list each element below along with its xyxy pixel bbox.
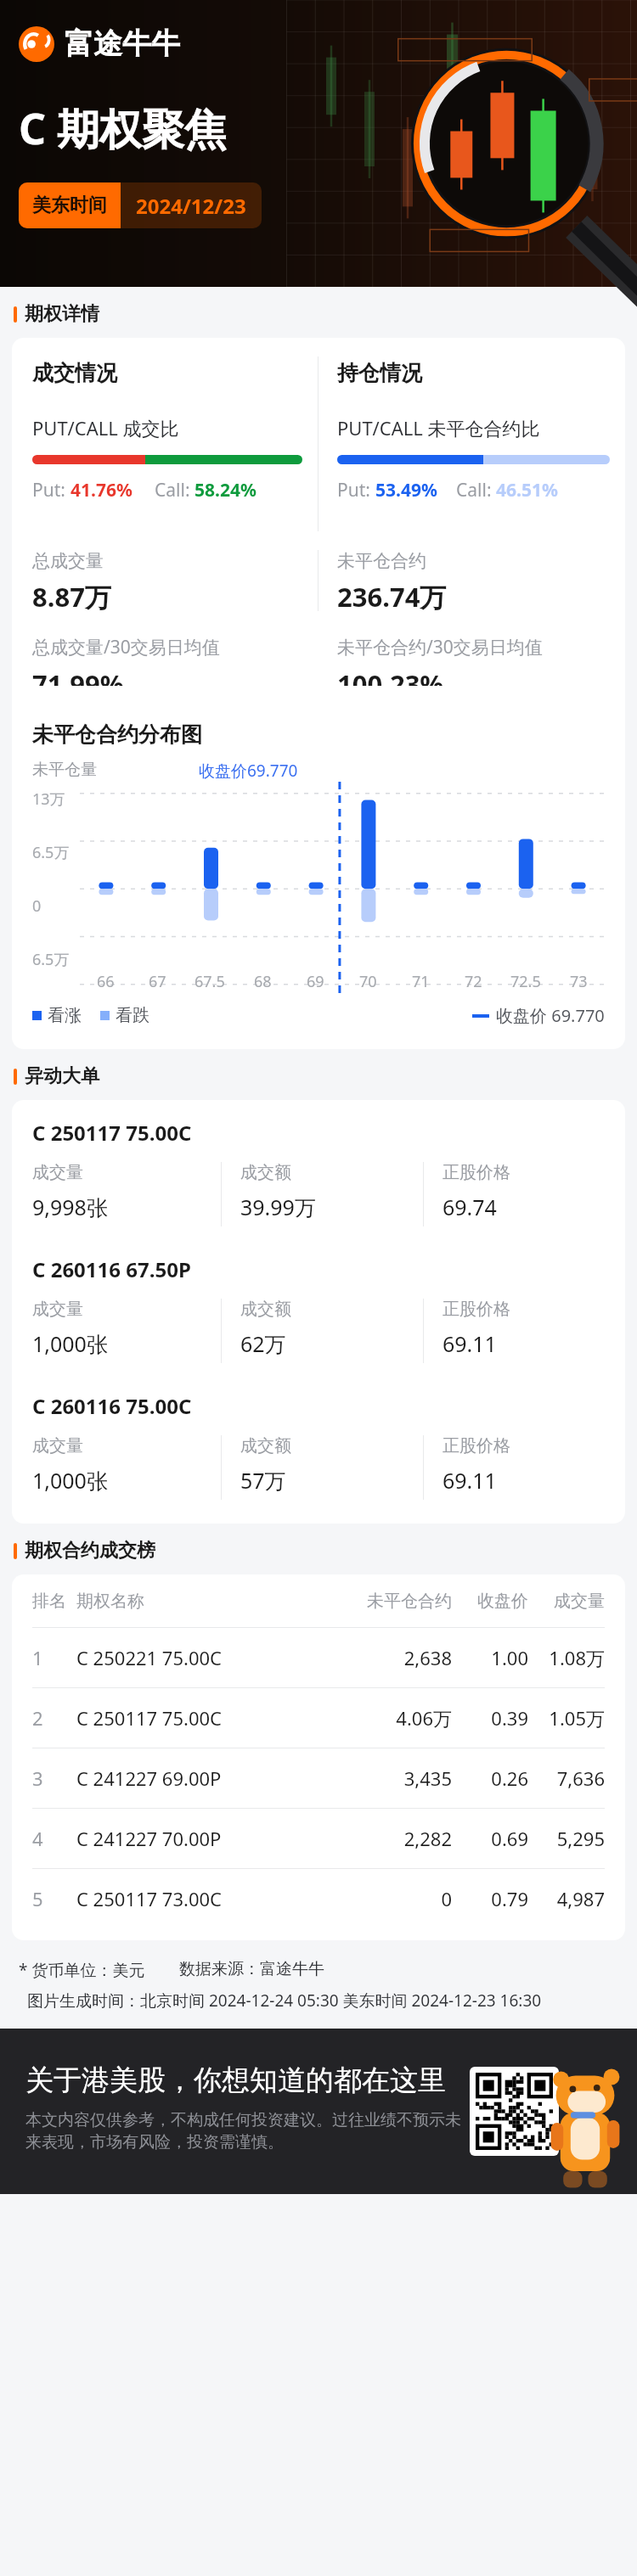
staticText: 2024/12/23 (136, 192, 246, 220)
staticText: 71 (412, 971, 430, 992)
staticText: 0 (32, 895, 42, 917)
staticText: 期权合约成交榜 (25, 1539, 155, 1563)
staticText: 57万 (240, 1466, 286, 1495)
staticText: 68 (254, 971, 272, 992)
staticText: 异动大单 (25, 1064, 99, 1088)
staticText: 1,000张 (32, 1329, 108, 1358)
staticText: 1.00 (452, 1645, 528, 1670)
staticText: 39.99万 (240, 1193, 316, 1221)
staticText: 69.74 (443, 1193, 497, 1221)
staticText: 2,638 (352, 1645, 452, 1670)
staticText: 成交额 (240, 1435, 291, 1456)
staticText: PUT/CALL 未平仓合约比 (337, 415, 540, 441)
staticText: 5 (32, 1886, 76, 1911)
staticText: 成交额 (240, 1162, 291, 1183)
staticText: 美东时间 (32, 194, 107, 217)
staticText: 总成交量 (32, 550, 104, 572)
staticText: 72.5 (510, 971, 541, 992)
staticText: 5,295 (528, 1826, 605, 1851)
staticText: 期权名称 (76, 1591, 352, 1612)
staticText: 3 (32, 1765, 76, 1791)
staticText: C 250221 75.00C (76, 1645, 352, 1670)
staticText: 8.87万 (32, 579, 111, 615)
staticText: C 241227 70.00P (76, 1826, 352, 1851)
staticText: 成交额 (240, 1299, 291, 1320)
staticText: 期权详情 (25, 302, 99, 326)
staticText: 未平仓合约/30交易日均值 (337, 635, 543, 659)
staticText: 236.74万 (337, 579, 447, 615)
staticText: 3,435 (352, 1765, 452, 1791)
staticText: 收盘价69.770 (199, 760, 298, 782)
staticText: 成交量 (32, 1435, 83, 1456)
button[interactable]: 美东时间 (19, 182, 262, 228)
button[interactable]: 3 (12, 1748, 625, 1808)
staticText: 100.23% (337, 666, 444, 686)
staticText: * 货币单位：美元 (19, 1959, 145, 1981)
staticText: 未平仓量 (32, 760, 97, 780)
staticText: 2 (32, 1705, 76, 1731)
button[interactable]: QR code (470, 2067, 559, 2156)
button[interactable]: 1 (12, 1628, 625, 1687)
staticText: 本文内容仅供参考，不构成任何投资建议。过往业绩不预示未来表现，市场有风险，投资需… (25, 2110, 465, 2152)
staticText: 总成交量/30交易日均值 (32, 635, 220, 659)
staticText: 6.5万 (32, 949, 70, 970)
staticText: 0.26 (452, 1765, 528, 1791)
staticText: 未平仓合约 (337, 550, 426, 572)
staticText: 正股价格 (443, 1435, 510, 1456)
staticText: 图片生成时间：北京时间 2024-12-24 05:30 美东时间 2024-1… (27, 1990, 542, 2012)
staticText: 66 (97, 971, 115, 992)
staticText: PUT/CALL 成交比 (32, 415, 179, 441)
staticText: 成交量 (528, 1591, 605, 1612)
staticText: C 250117 73.00C (76, 1886, 352, 1911)
staticText: 富途牛牛 (65, 25, 180, 62)
staticText: 1.08万 (528, 1645, 605, 1670)
staticText: Put: (337, 478, 375, 502)
staticText: 46.51% (496, 478, 558, 502)
staticText: 69.11 (443, 1466, 497, 1495)
staticText: 41.76% (70, 478, 132, 502)
staticText: 6.5万 (32, 842, 70, 863)
staticText: 未平仓合约分布图 (32, 721, 202, 748)
staticText: 0.79 (452, 1886, 528, 1911)
staticText: 72 (465, 971, 482, 992)
staticText: C 241227 69.00P (76, 1765, 352, 1791)
staticText: 1.05万 (528, 1705, 605, 1731)
staticText: 7,636 (528, 1765, 605, 1791)
staticText: 4 (32, 1826, 76, 1851)
staticText: 9,998张 (32, 1193, 108, 1221)
staticText: 1 (32, 1645, 76, 1670)
staticText: 71.99% (32, 666, 124, 686)
staticText: 0 (352, 1886, 452, 1911)
staticText: 看跌 (116, 1005, 149, 1026)
staticText: 排名 (32, 1591, 76, 1612)
staticText: 62万 (240, 1329, 286, 1358)
staticText: 成交量 (32, 1162, 83, 1183)
staticText: 4.06万 (352, 1705, 452, 1731)
staticText: 69 (307, 971, 324, 992)
button[interactable]: C 260116 67.50P (12, 1255, 625, 1363)
staticText: 0.69 (452, 1826, 528, 1851)
button[interactable]: 5 (12, 1869, 625, 1928)
staticText: C 260116 75.00C (32, 1392, 192, 1420)
staticText: 70 (359, 971, 377, 992)
staticText: 73 (570, 971, 588, 992)
button[interactable]: 4 (12, 1809, 625, 1868)
button[interactable]: 2 (12, 1688, 625, 1748)
staticText: 0.39 (452, 1705, 528, 1731)
staticText: 持仓情况 (337, 360, 422, 386)
staticText: 1,000张 (32, 1466, 108, 1495)
staticText: 2,282 (352, 1826, 452, 1851)
staticText: C 260116 67.50P (32, 1255, 191, 1283)
staticText: 13万 (32, 789, 65, 810)
staticText: C 250117 75.00C (76, 1705, 352, 1731)
staticText: 未平仓合约 (352, 1591, 452, 1612)
staticText: 成交情况 (32, 360, 117, 386)
staticText: Call: (155, 478, 194, 502)
staticText: Put: (32, 478, 70, 502)
staticText: 67.5 (194, 971, 225, 992)
button[interactable]: C 250117 75.00C (12, 1119, 625, 1226)
staticText: 53.49% (375, 478, 437, 502)
staticText: 数据来源：富途牛牛 (179, 1959, 324, 1979)
button[interactable]: C 260116 75.00C (12, 1392, 625, 1500)
staticText: 4,987 (528, 1886, 605, 1911)
